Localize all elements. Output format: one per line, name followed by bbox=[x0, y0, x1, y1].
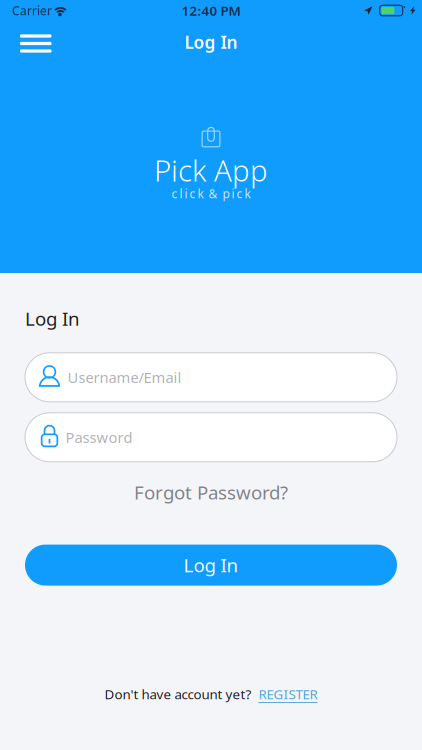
staticText: Username/Email bbox=[67, 368, 181, 387]
staticText: REGISTER bbox=[258, 685, 317, 703]
staticText: c l i c k & p i c k bbox=[171, 185, 250, 201]
button[interactable]: Forgot Password? bbox=[122, 473, 300, 512]
button[interactable]: Log In bbox=[25, 545, 397, 586]
staticText: Forgot Password? bbox=[134, 480, 288, 505]
button[interactable]: Menu bbox=[0, 19, 61, 64]
staticText: Password bbox=[65, 428, 132, 447]
staticText: Log In bbox=[183, 553, 238, 577]
staticText: 12:40 PM bbox=[181, 2, 240, 19]
staticText: Don't have account yet? bbox=[104, 685, 251, 703]
staticText: Carrier bbox=[12, 2, 52, 18]
staticText: Log In bbox=[184, 30, 237, 53]
staticText: Log In bbox=[25, 306, 80, 331]
staticText: Pick App bbox=[154, 150, 268, 189]
button[interactable]: REGISTER bbox=[251, 685, 317, 703]
